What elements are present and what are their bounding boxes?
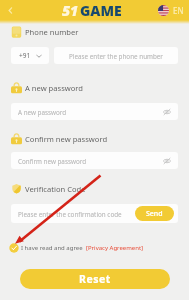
staticText: EN — [173, 5, 184, 16]
staticText: +91 — [19, 51, 31, 60]
button[interactable]: EN — [158, 0, 184, 20]
staticText: Reset — [79, 272, 111, 286]
button[interactable]: A new password — [11, 103, 178, 120]
staticText: Phone number — [25, 27, 79, 37]
button[interactable]: I have read and agree — [9, 243, 144, 253]
staticText: Send — [146, 209, 163, 219]
button[interactable]: Send — [135, 206, 174, 221]
staticText: Confirm new password — [18, 157, 87, 166]
button[interactable]: Please enter the phone number — [54, 47, 178, 64]
staticText: I have read and agree — [21, 244, 83, 252]
staticText: Please enter the confirmation code — [18, 210, 122, 219]
staticText: 51 — [62, 1, 79, 20]
button[interactable]: Show password — [163, 157, 171, 165]
staticText: Verification Code — [25, 184, 86, 194]
staticText: GAME — [80, 1, 122, 20]
staticText: [Privacy Agreement] — [86, 244, 144, 252]
button[interactable]: Reset — [20, 269, 170, 289]
button[interactable]: Confirm new password — [11, 152, 178, 169]
staticText: A new password — [18, 108, 67, 117]
staticText: Confirm new password — [25, 134, 108, 144]
staticText: A new password — [25, 83, 84, 93]
button[interactable]: Back — [3, 3, 17, 17]
staticText: Please enter the phone number — [69, 52, 163, 61]
button[interactable]: +91 — [11, 47, 49, 64]
button[interactable]: Show password — [163, 108, 171, 116]
